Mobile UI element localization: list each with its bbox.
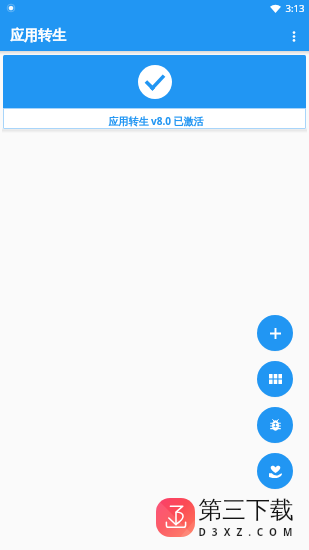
staticText: 3:13 <box>285 2 305 15</box>
staticText: 应用转生 v8.0 已激活 <box>108 114 204 128</box>
button[interactable]: More options <box>282 24 306 48</box>
button[interactable]: Add application <box>257 315 293 351</box>
staticText: D3XZ.COM <box>198 525 299 539</box>
staticText: 应用转生 <box>10 27 66 45</box>
staticText: 第三下载 <box>198 495 294 525</box>
button[interactable]: All applications <box>257 361 293 397</box>
button[interactable]: 应用转生 v8.0 已激活 <box>3 55 306 129</box>
button[interactable]: Report bug <box>257 407 293 443</box>
button[interactable]: Donate <box>257 453 293 489</box>
